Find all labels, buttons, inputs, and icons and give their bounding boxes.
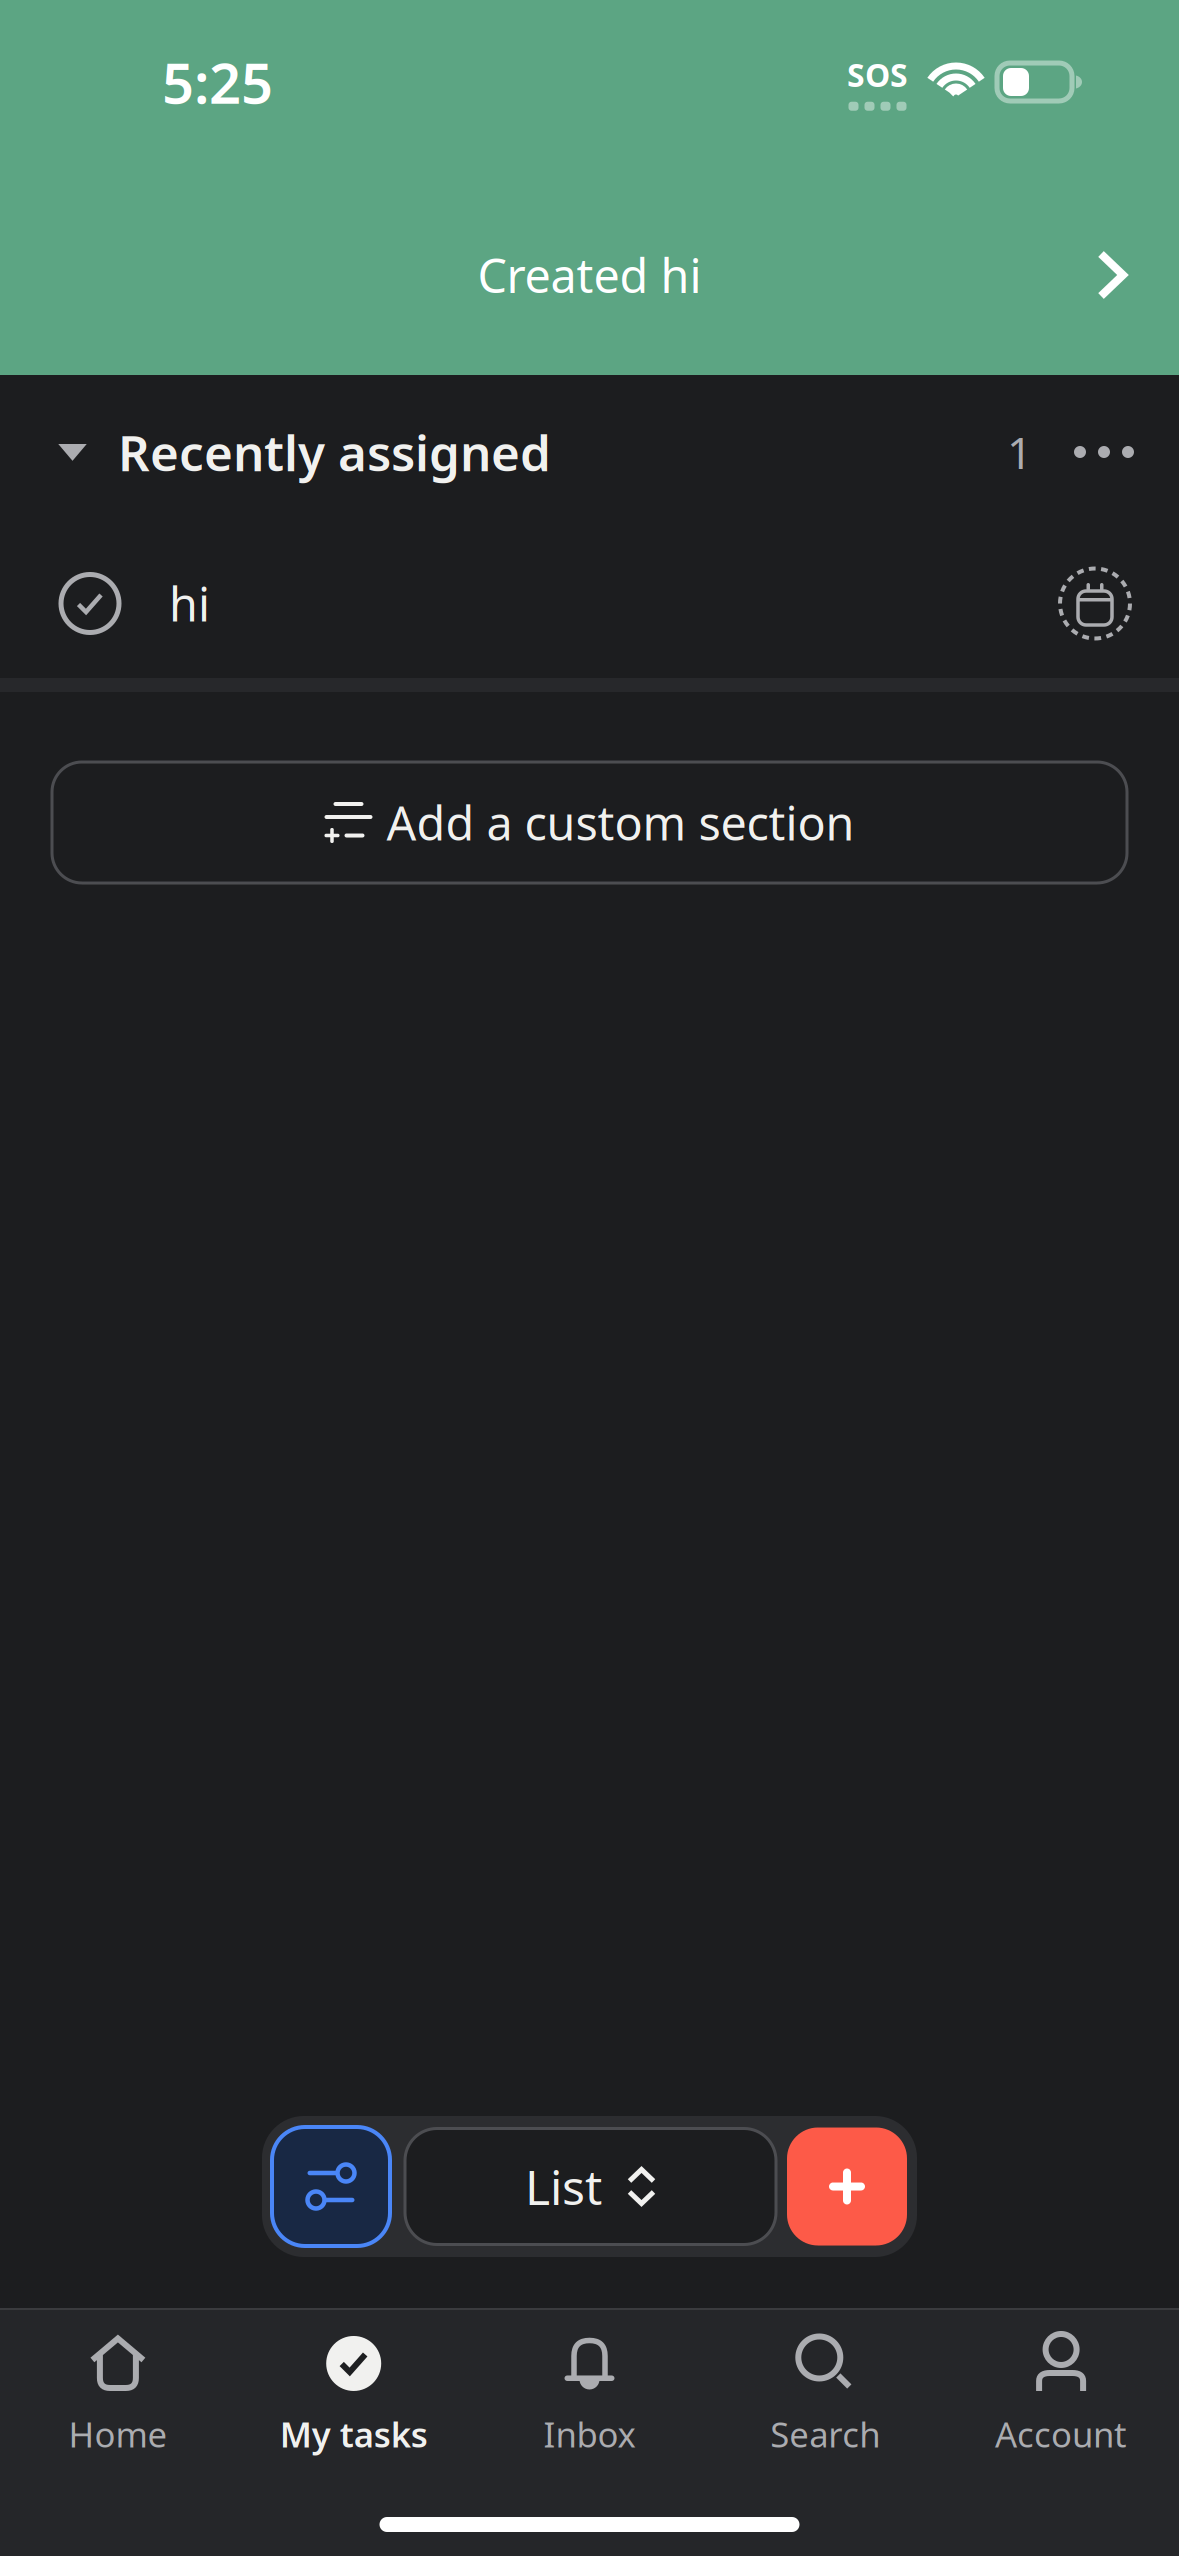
staticText: Account xyxy=(995,2411,1127,2457)
staticText: 1 xyxy=(1007,423,1032,481)
button[interactable]: Recently assigned xyxy=(0,403,551,501)
staticText: List xyxy=(525,2155,602,2218)
staticText: hi xyxy=(169,572,210,634)
button[interactable]: Section options xyxy=(1060,431,1148,472)
button[interactable]: Home xyxy=(0,2336,236,2456)
staticText: My tasks xyxy=(280,2411,428,2457)
button[interactable]: Inbox xyxy=(472,2336,707,2456)
staticText: Search xyxy=(770,2411,880,2457)
staticText: Inbox xyxy=(543,2411,635,2457)
button[interactable]: hi xyxy=(0,529,1179,678)
staticText: 5:25 xyxy=(162,45,273,119)
staticText: Add a custom section xyxy=(386,791,854,853)
button[interactable]: List xyxy=(405,2128,776,2244)
staticText: SOS xyxy=(847,53,908,96)
staticText: Created hi xyxy=(477,244,701,306)
button[interactable]: New task xyxy=(787,2127,907,2245)
button[interactable]: Add a custom section xyxy=(52,762,1127,883)
staticText: Home xyxy=(68,2411,167,2457)
button[interactable]: Filter xyxy=(272,2127,390,2246)
button[interactable]: Account xyxy=(943,2336,1179,2456)
staticText: Recently assigned xyxy=(118,419,551,485)
button[interactable]: Search xyxy=(707,2336,943,2456)
button[interactable]: My tasks xyxy=(236,2336,472,2456)
button[interactable]: Created hi xyxy=(0,227,1179,323)
